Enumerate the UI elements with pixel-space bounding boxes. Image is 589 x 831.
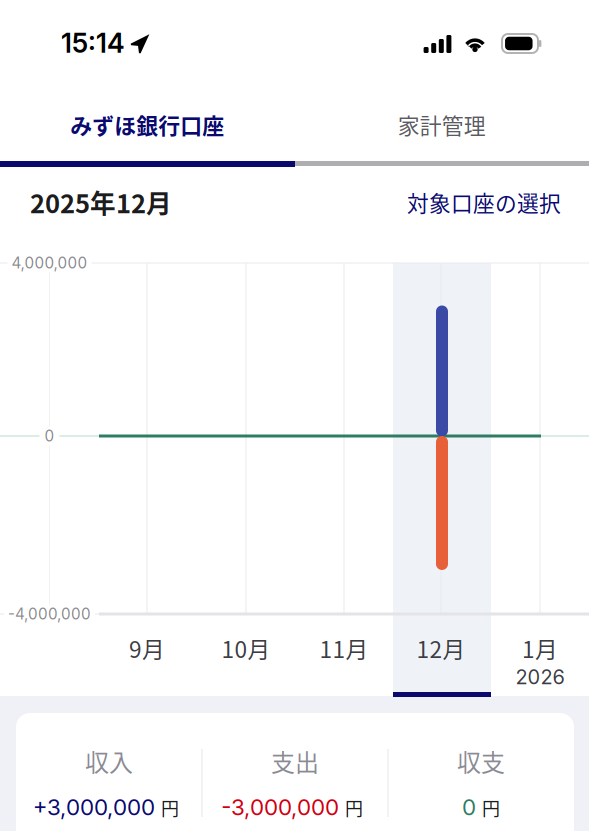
staticText: 1月 [522, 632, 558, 664]
staticText: 家計管理 [398, 109, 486, 140]
staticText: 11月 [319, 632, 368, 664]
staticText: 2025年12月 [30, 183, 172, 221]
button[interactable]: みずほ銀行口座 [0, 88, 294, 161]
staticText: 円 [482, 794, 500, 821]
staticText: 収入 [85, 744, 133, 778]
staticText: +3,000,000 [33, 793, 155, 820]
button[interactable]: 家計管理 [294, 88, 589, 161]
staticText: 対象口座の選択 [407, 186, 561, 218]
staticText: 0 [462, 793, 476, 820]
staticText: 12月 [416, 632, 465, 664]
staticText: 10月 [221, 632, 270, 664]
staticText: 9月 [129, 632, 165, 664]
staticText: 0 [44, 427, 54, 445]
staticText: 円 [345, 794, 363, 821]
staticText: 支出 [271, 744, 319, 778]
staticText: 4,000,000 [11, 254, 87, 272]
staticText: -4,000,000 [8, 605, 91, 623]
staticText: 15:14 [61, 27, 125, 59]
staticText: -3,000,000 [221, 793, 339, 820]
staticText: 収支 [457, 744, 505, 778]
staticText: 円 [161, 794, 179, 821]
staticText: 2026 [515, 665, 564, 689]
button[interactable]: 対象口座の選択 [401, 180, 567, 224]
staticText: みずほ銀行口座 [70, 109, 224, 140]
